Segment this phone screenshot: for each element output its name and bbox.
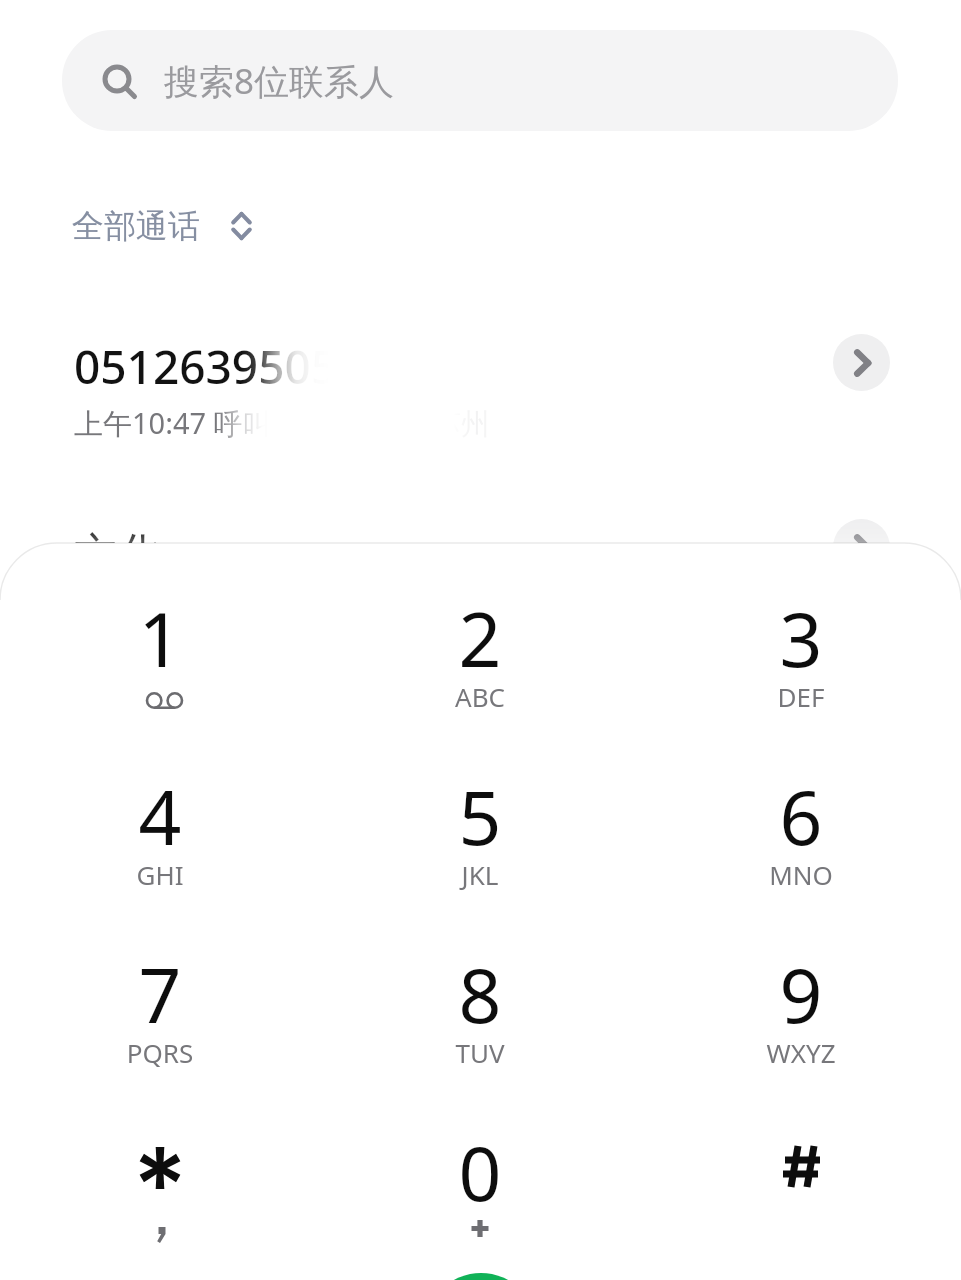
staticText: 8 xyxy=(320,943,640,1045)
staticText: 全部通话 xyxy=(72,206,200,246)
staticText: 5 xyxy=(320,765,640,867)
button[interactable]: Key 5 xyxy=(320,765,640,943)
button[interactable]: Key 8 xyxy=(320,943,640,1121)
button[interactable]: Call details xyxy=(833,334,890,391)
button[interactable]: Key 4 xyxy=(0,765,320,943)
button[interactable]: Key 3 xyxy=(641,587,961,765)
button[interactable]: 全部通话 xyxy=(72,206,252,246)
staticText: GHI xyxy=(0,857,320,892)
staticText: TUV xyxy=(320,1035,640,1070)
button[interactable]: 搜索8位联系人 xyxy=(62,30,898,131)
staticText: 4 xyxy=(0,765,320,867)
staticText: 搜索8位联系人 xyxy=(164,57,395,105)
staticText: PQRS xyxy=(0,1035,320,1070)
button[interactable]: 051263950512 xyxy=(0,312,961,452)
staticText: 1 xyxy=(0,587,320,689)
button[interactable]: Key 1 xyxy=(0,587,320,765)
staticText: WXYZ xyxy=(641,1035,961,1070)
staticText: 文化 xyxy=(74,527,162,582)
staticText: MNO xyxy=(641,857,961,892)
button[interactable]: Pound key xyxy=(641,1121,961,1280)
button[interactable]: 文化 xyxy=(0,497,961,597)
button[interactable]: Call details 2 xyxy=(833,519,890,576)
staticText: ABC xyxy=(320,679,640,714)
staticText: JKL xyxy=(320,857,640,892)
staticText: DEF xyxy=(641,679,961,714)
staticText: 7 xyxy=(0,943,320,1045)
staticText: 0 xyxy=(320,1121,640,1223)
button[interactable]: Key 0 xyxy=(320,1121,640,1280)
staticText: 9 xyxy=(641,943,961,1045)
button[interactable]: Key 2 xyxy=(320,587,640,765)
staticText: 3 xyxy=(641,587,961,689)
button[interactable]: Call xyxy=(425,1273,537,1280)
staticText: 2 xyxy=(320,587,640,689)
button[interactable]: Star key xyxy=(0,1121,320,1280)
staticText: 上午10:47 呼叫 中国江苏省苏州 xyxy=(74,403,490,443)
button[interactable]: Key 7 xyxy=(0,943,320,1121)
staticText: 051263950512 xyxy=(74,335,390,398)
button[interactable]: Key 9 xyxy=(641,943,961,1121)
button[interactable]: Key 6 xyxy=(641,765,961,943)
staticText: 6 xyxy=(641,765,961,867)
